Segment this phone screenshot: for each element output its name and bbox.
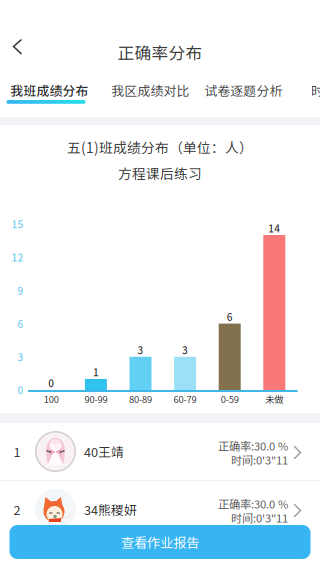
staticText: 正确率分布 bbox=[117, 40, 202, 64]
staticText: 3 bbox=[137, 343, 143, 357]
staticText: 0 bbox=[48, 376, 54, 390]
button[interactable]: 查看作业报告 bbox=[9, 525, 310, 559]
staticText: 40王靖 bbox=[84, 442, 124, 461]
button[interactable]: 返回 bbox=[2, 30, 36, 64]
button[interactable]: 2 bbox=[0, 481, 320, 538]
staticText: 90-99 bbox=[84, 392, 107, 406]
staticText: 试卷逐题分析 bbox=[204, 81, 282, 99]
button[interactable]: 试卷逐题分析 bbox=[204, 81, 282, 109]
staticText: 15 bbox=[11, 217, 23, 231]
button[interactable]: 1 bbox=[0, 423, 320, 480]
staticText: 五(1)班成绩分布（单位：人） bbox=[67, 137, 253, 157]
staticText: 6 bbox=[227, 309, 233, 324]
staticText: 正确率:30.0 % bbox=[218, 437, 288, 454]
staticText: 0-59 bbox=[221, 392, 239, 406]
staticText: 正确率:30.0 % bbox=[218, 495, 288, 512]
staticText: 3 bbox=[17, 350, 23, 364]
staticText: 14 bbox=[268, 221, 280, 235]
staticText: 时间:0'3"11 bbox=[231, 509, 288, 526]
staticText: 时间 bbox=[311, 81, 320, 99]
staticText: 1 bbox=[93, 365, 99, 379]
staticText: 我班成绩分布 bbox=[10, 81, 88, 99]
button[interactable]: 我区成绩对比 bbox=[111, 81, 186, 109]
staticText: 查看作业报告 bbox=[121, 532, 199, 552]
staticText: 34熊稷妍 bbox=[84, 500, 137, 519]
staticText: 时间:0'3"11 bbox=[231, 451, 288, 468]
staticText: 2 bbox=[13, 500, 20, 519]
staticText: 80-89 bbox=[129, 392, 152, 406]
staticText: 3 bbox=[182, 343, 188, 357]
staticText: 1 bbox=[13, 442, 20, 461]
button[interactable]: 我班成绩分布 bbox=[10, 81, 85, 109]
staticText: 12 bbox=[11, 250, 23, 264]
staticText: 9 bbox=[17, 283, 23, 298]
staticText: 6 bbox=[17, 316, 23, 331]
staticText: 方程课后练习 bbox=[118, 163, 202, 183]
staticText: 100 bbox=[44, 392, 59, 406]
staticText: 我区成绩对比 bbox=[111, 81, 189, 99]
staticText: 60-79 bbox=[174, 392, 197, 406]
staticText: 0 bbox=[17, 383, 23, 397]
staticText: 未做 bbox=[265, 392, 283, 406]
button[interactable]: 时间 bbox=[311, 81, 320, 109]
